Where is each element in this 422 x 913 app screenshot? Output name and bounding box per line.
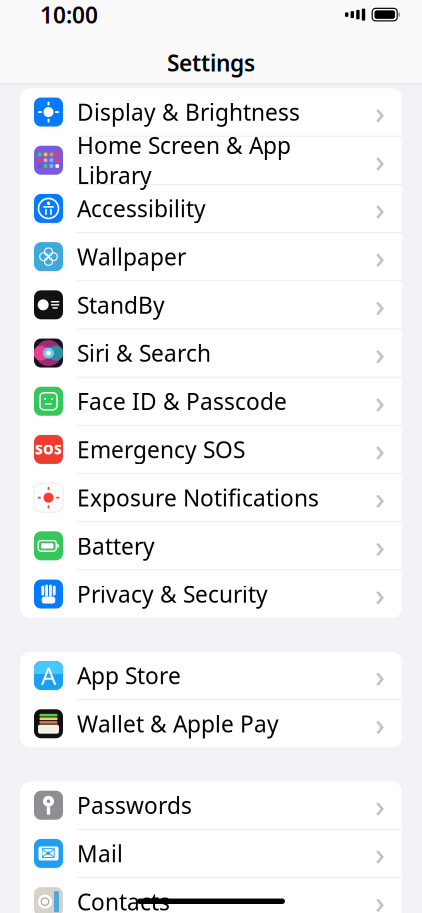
staticText: Display & Brightness	[77, 97, 300, 127]
staticText: Face ID & Passcode	[77, 386, 287, 416]
staticText: ›	[375, 140, 385, 181]
staticText: ›	[375, 881, 385, 913]
button[interactable]: Accessibility	[20, 185, 402, 233]
button[interactable]: Siri & Search	[20, 329, 402, 377]
staticText: Exposure Notifications	[77, 483, 319, 513]
button[interactable]: Battery	[20, 522, 402, 570]
staticText: ›	[375, 333, 385, 373]
button[interactable]: Wallpaper	[20, 233, 402, 281]
staticText: ›	[375, 703, 385, 744]
staticText: ›	[375, 429, 385, 470]
button[interactable]: Display & Brightness	[20, 88, 402, 136]
button[interactable]: Wallet & Apple Pay	[20, 700, 402, 747]
staticText: Mail	[77, 838, 123, 868]
staticText: Siri & Search	[77, 338, 211, 368]
staticText: Passwords	[77, 790, 192, 820]
staticText: ›	[375, 381, 385, 422]
staticText: A	[41, 660, 56, 691]
staticText: Wallet & Apple Pay	[77, 709, 279, 739]
staticText: ›	[375, 525, 385, 566]
staticText: ›	[375, 574, 385, 614]
staticText: StandBy	[77, 290, 165, 320]
staticText: ✉	[40, 843, 56, 864]
staticText: SOS	[35, 441, 62, 458]
button[interactable]: Exposure Notifications	[20, 474, 402, 522]
staticText: Contacts	[77, 887, 170, 913]
staticText: ›	[375, 236, 385, 277]
button[interactable]: Privacy & Security	[20, 570, 402, 618]
staticText: App Store	[77, 660, 181, 691]
staticText: Emergency SOS	[77, 434, 245, 464]
staticText: Wallpaper	[77, 242, 186, 272]
button[interactable]: A	[20, 652, 402, 700]
button[interactable]: StandBy	[20, 281, 402, 329]
staticText: ›	[375, 92, 385, 132]
staticText: ›	[375, 477, 385, 518]
staticText: ›	[375, 833, 385, 874]
staticText: Accessibility	[77, 193, 206, 223]
staticText: Settings	[167, 47, 255, 78]
staticText: 10:00	[40, 0, 98, 30]
staticText: ›	[375, 785, 385, 826]
staticText: Privacy & Security	[77, 579, 268, 609]
staticText: ›	[375, 655, 385, 696]
button[interactable]: Face ID & Passcode	[20, 377, 402, 426]
button[interactable]: ✉	[20, 830, 402, 878]
staticText: Battery	[77, 531, 155, 561]
button[interactable]: Home Screen & App Library	[20, 136, 402, 185]
staticText: Home Screen & App Library	[77, 130, 291, 190]
staticText: ›	[375, 188, 385, 229]
button[interactable]: Contacts	[20, 878, 402, 913]
button[interactable]: Passwords	[20, 781, 402, 830]
staticText: ›	[375, 284, 385, 325]
button[interactable]: SOS	[20, 426, 402, 474]
